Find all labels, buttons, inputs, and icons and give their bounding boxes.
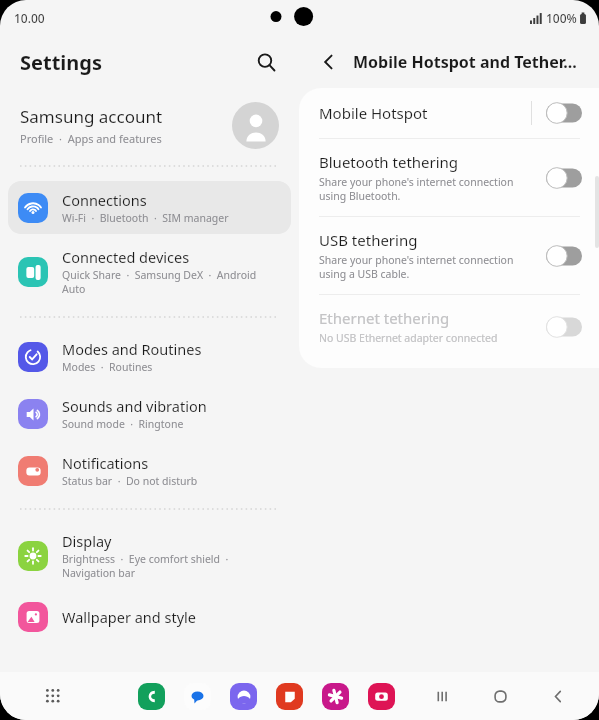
button[interactable]: Home [485,681,515,711]
button[interactable]: Sounds and vibration [8,387,291,440]
staticText: Mobile Hotspot [319,103,428,123]
staticText: 100% [546,10,577,26]
button[interactable]: Samsung account [0,88,299,162]
button[interactable]: Toggle [546,245,582,267]
button[interactable]: Messages [182,681,212,711]
staticText: Wallpaper and style [62,607,196,627]
staticText: Mobile Hotspot and Tether... [353,51,577,73]
staticText: USB tethering [319,230,418,250]
button[interactable]: Recents [427,681,457,711]
staticText: No USB Ethernet adapter connected [319,331,498,345]
button[interactable]: Mobile Hotspot [299,88,599,138]
button[interactable]: Connections [8,181,291,234]
button[interactable]: Back [313,46,345,78]
staticText: Notifications [62,453,149,473]
button[interactable]: USB tethering [299,217,599,294]
staticText: Brightness · Eye comfort shield · Naviga… [62,552,229,580]
button[interactable]: Wallpaper and style [8,593,291,641]
staticText: Display [62,531,112,551]
button[interactable]: Bluetooth tethering [299,139,599,216]
button[interactable]: Toggle [546,102,582,124]
staticText: Bluetooth tethering [319,152,459,172]
staticText: Quick Share · Samsung DeX · Android Auto [62,268,257,296]
staticText: Share your phone's internet connection u… [319,175,514,203]
button[interactable]: Phone [136,681,166,711]
button[interactable]: Search [249,45,283,79]
button[interactable]: Internet [228,681,258,711]
button[interactable]: Camera [366,681,396,711]
staticText: Share your phone's internet connection u… [319,253,514,281]
staticText: Samsung account [20,105,163,128]
staticText: Modes and Routines [62,339,202,359]
button[interactable]: Connected devices [8,238,291,305]
staticText: Modes · Routines [62,360,153,374]
staticText: Status bar · Do not disturb [62,474,198,488]
button[interactable]: Back [543,681,573,711]
staticText: Connections [62,190,147,210]
button[interactable]: Display [8,522,291,589]
staticText: Wi-Fi · Bluetooth · SIM manager [62,211,229,225]
button[interactable]: Notifications [8,444,291,497]
staticText: Connected devices [62,247,190,267]
staticText: Sounds and vibration [62,396,207,416]
button[interactable]: Notes [274,681,304,711]
button[interactable]: Apps [38,681,68,711]
staticText: Profile · Apps and features [20,131,162,146]
staticText: Settings [20,49,102,76]
button[interactable]: Gallery [320,681,350,711]
button[interactable]: Toggle [546,316,582,338]
button[interactable]: Modes and Routines [8,330,291,383]
button[interactable]: Toggle [546,167,582,189]
staticText: Sound mode · Ringtone [62,417,184,431]
button[interactable]: Ethernet tethering [299,295,599,358]
staticText: 10.00 [14,10,45,26]
staticText: Ethernet tethering [319,308,450,328]
